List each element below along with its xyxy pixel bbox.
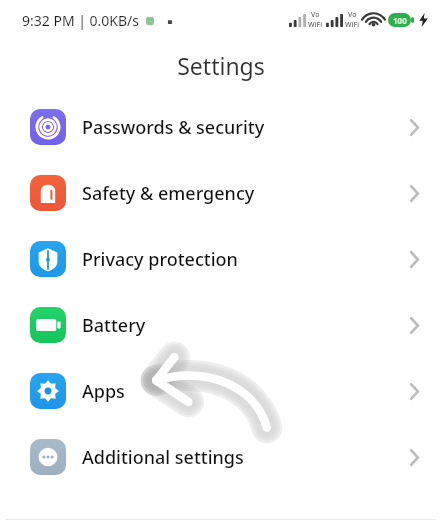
staticText: Vo bbox=[311, 10, 320, 20]
staticText: Safety & emergency bbox=[82, 181, 255, 206]
button[interactable]: Safety & emergency bbox=[0, 160, 442, 226]
staticText: Settings bbox=[177, 50, 265, 81]
staticText: 9:32 PM | 0.0KB/s bbox=[22, 11, 140, 30]
button[interactable]: Passwords & security bbox=[0, 90, 442, 160]
staticText: Additional settings bbox=[82, 445, 244, 470]
staticText: Battery bbox=[82, 313, 146, 338]
button[interactable]: Battery bbox=[0, 292, 442, 358]
staticText: Vo bbox=[348, 10, 357, 20]
staticText: Apps bbox=[82, 379, 125, 404]
staticText: WiFi bbox=[308, 20, 323, 30]
staticText: 100 bbox=[393, 15, 407, 26]
button[interactable]: Apps bbox=[0, 358, 442, 424]
button[interactable]: Privacy protection bbox=[0, 226, 442, 292]
staticText: Privacy protection bbox=[82, 247, 238, 272]
staticText: WiFi bbox=[345, 20, 360, 30]
button[interactable]: Additional settings bbox=[0, 424, 442, 490]
staticText: Passwords & security bbox=[82, 115, 265, 140]
